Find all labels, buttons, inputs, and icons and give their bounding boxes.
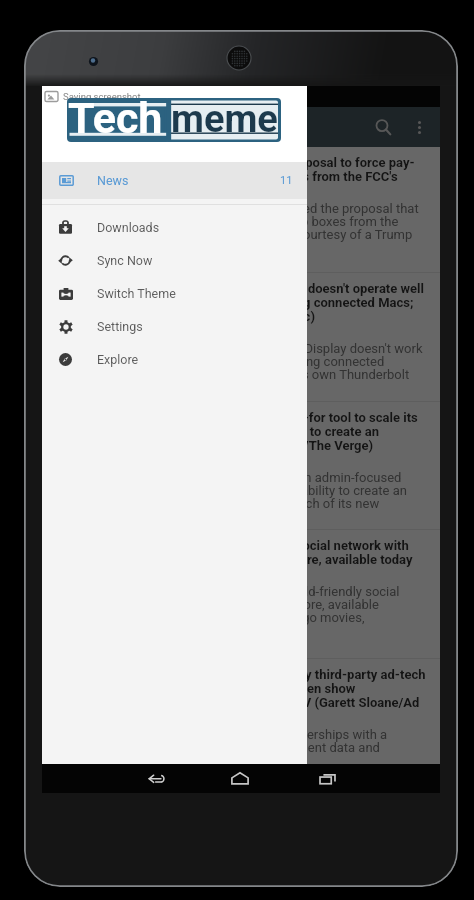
button[interactable]: News <box>42 162 307 199</box>
button[interactable]: Explore <box>42 343 307 376</box>
staticText: Explore <box>97 352 139 367</box>
staticText: Sync Now <box>97 253 153 268</box>
staticText: 11 <box>280 174 293 187</box>
button[interactable]: Home <box>197 764 283 793</box>
staticText: Switch Theme <box>97 286 176 301</box>
staticText: Facebook expands its partnerships with k… <box>56 668 426 710</box>
staticText: Slack has today launched Enterprise Grid… <box>56 472 407 511</box>
button[interactable]: Settings <box>42 310 307 343</box>
button[interactable]: Search <box>362 107 405 147</box>
staticText: FCC Chairman Ajit Pai has withdrawn a pr… <box>56 156 415 184</box>
staticText: LG UltraFine 5K Display monitor reported… <box>56 282 424 324</box>
staticText: Tech <box>68 93 163 137</box>
staticText: meme <box>171 97 278 141</box>
button[interactable]: Recent apps <box>284 764 370 793</box>
staticText: LG has confirmed that its new UltraFine … <box>56 343 423 382</box>
button[interactable]: More options <box>405 107 434 147</box>
staticText: Lego has launched Lego Life, a free and … <box>56 586 400 625</box>
button[interactable]: Sync Now <box>42 244 307 277</box>
staticText: Slack launches Enterprise Grid, a new pa… <box>56 411 418 453</box>
staticText: Lego launches Lego Life, a child-friendl… <box>56 539 413 567</box>
staticText: The FCC's new chairman has quietly remov… <box>56 203 419 242</box>
button[interactable]: Switch Theme <box>42 277 307 310</box>
staticText: Settings <box>97 319 143 334</box>
staticText: Downloads <box>97 220 160 235</box>
button[interactable]: Back <box>114 764 200 793</box>
staticText: News <box>97 173 129 188</box>
button[interactable]: Downloads <box>42 211 307 244</box>
staticText: Saving screenshot... <box>63 91 149 102</box>
staticText: Facebook is expanding its advertising pa… <box>56 729 388 755</box>
